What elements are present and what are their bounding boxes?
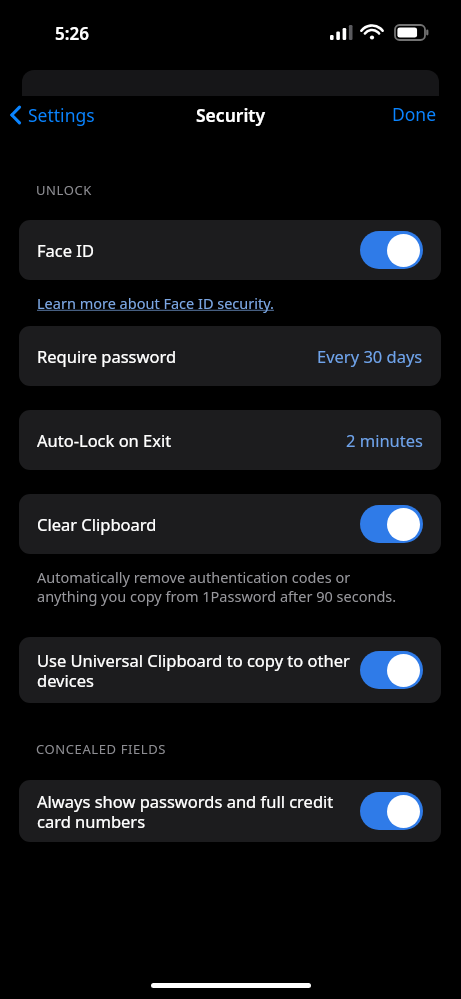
button[interactable]: Always show passwords and full credit ca… [19, 780, 441, 842]
button[interactable]: Done [392, 99, 437, 129]
staticText: Require password [37, 345, 317, 367]
button[interactable]: Use Universal Clipboard to copy to other… [19, 637, 441, 703]
staticText: Settings [28, 103, 95, 127]
button[interactable]: Face ID [19, 220, 441, 280]
button[interactable]: Toggle on [360, 505, 423, 543]
staticText: Use Universal Clipboard to copy to other… [37, 649, 350, 692]
staticText: Learn more about Face ID security. [37, 293, 274, 313]
staticText: Automatically remove authentication code… [37, 567, 409, 606]
staticText: Security [196, 103, 266, 127]
button[interactable]: Toggle on [360, 231, 423, 269]
staticText: 2 minutes [346, 429, 423, 451]
button[interactable]: Clear Clipboard [19, 494, 441, 554]
staticText: Always show passwords and full credit ca… [37, 790, 350, 833]
staticText: Face ID [37, 239, 360, 261]
button[interactable]: Toggle on [360, 792, 423, 830]
staticText: UNLOCK [36, 181, 92, 199]
staticText: CONCEALED FIELDS [36, 740, 167, 758]
button[interactable]: Learn more about Face ID security. [37, 293, 274, 313]
staticText: Done [392, 102, 437, 126]
button[interactable]: Toggle on [360, 651, 423, 689]
button[interactable]: Settings [8, 99, 95, 131]
staticText: Clear Clipboard [37, 513, 360, 535]
staticText: Auto-Lock on Exit [37, 429, 346, 451]
button[interactable]: Require password [19, 326, 441, 386]
button[interactable]: Auto-Lock on Exit [19, 410, 441, 470]
staticText: Every 30 days [317, 345, 423, 367]
staticText: 5:26 [55, 22, 89, 45]
